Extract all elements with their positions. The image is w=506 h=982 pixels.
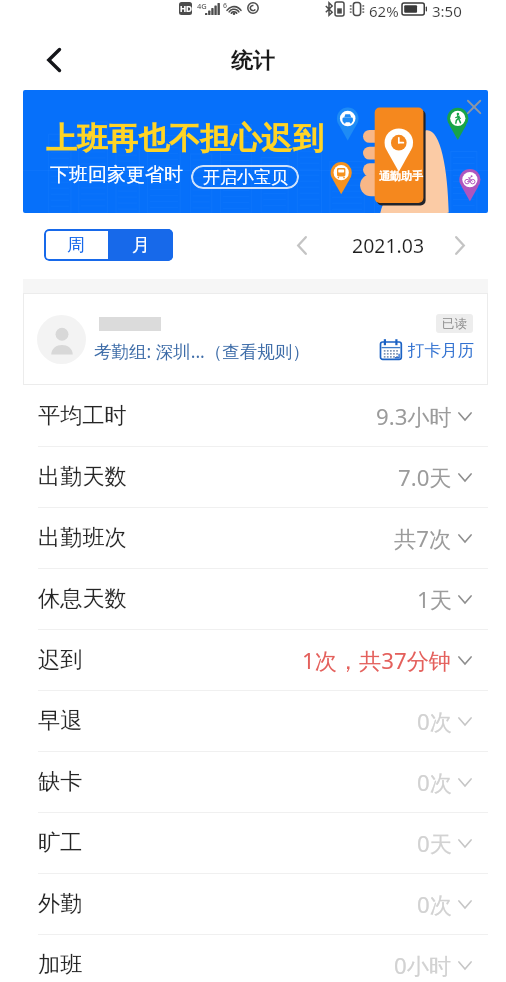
button[interactable]: 早退 [0,690,506,751]
staticText: 下班回家更省时 [50,163,183,187]
staticText: 考勤组: 深圳...（查看规则） [94,339,310,363]
button[interactable]: 休息天数 [0,568,506,629]
staticText: 出勤班次 [38,524,127,552]
button[interactable]: 外勤 [0,873,506,934]
staticText: 通勤助手 [379,169,423,183]
staticText: 0次 [417,706,452,736]
button[interactable]: 出勤班次 [0,507,506,568]
button[interactable]: 开启小宝贝 [191,165,299,189]
staticText: 月 [132,234,150,257]
staticText: 外勤 [38,890,83,918]
staticText: 6 [223,1,228,11]
button[interactable]: 旷工 [0,812,506,873]
staticText: 4G [197,1,207,11]
staticText: 打卡月历 [408,340,474,361]
staticText: 0次 [417,889,452,919]
button[interactable]: Next month [444,229,476,261]
staticText: 迟到 [38,646,83,674]
staticText: 加班 [38,951,83,979]
staticText: 0天 [417,828,452,858]
staticText: 周 [67,234,85,257]
staticText: 平均工时 [38,402,127,430]
staticText: 7.0天 [398,462,452,492]
staticText: 开启小宝贝 [203,167,288,188]
button[interactable]: 缺卡 [0,751,506,812]
staticText: 62% [369,1,399,21]
staticText: 已读 [442,316,467,332]
staticText: HD [180,3,192,14]
button[interactable]: 平均工时 [0,385,506,446]
staticText: 休息天数 [38,585,127,613]
staticText: 早退 [38,707,83,735]
staticText: 出勤天数 [38,463,127,491]
button[interactable]: 月 [108,229,173,261]
staticText: 3:50 [432,1,462,21]
staticText: 缺卡 [38,768,83,796]
button[interactable]: Back [32,38,76,82]
staticText: 共7次 [394,523,452,553]
staticText: 统计 [231,47,275,74]
button[interactable]: Close banner [463,95,485,117]
button[interactable]: 出勤天数 [0,446,506,507]
staticText: 1次，共37分钟 [302,645,452,675]
button[interactable]: 周 [44,229,108,261]
staticText: 9.3小时 [376,401,452,431]
button[interactable]: 打卡月历 [380,339,474,361]
staticText: 旷工 [38,829,83,857]
staticText: 0小时 [394,950,452,980]
staticText: 0次 [417,767,452,797]
button[interactable]: 上班再也不担心迟到 [23,90,488,213]
staticText: 上班再也不担心迟到 [46,119,324,158]
button[interactable]: 加班 [0,934,506,982]
button[interactable]: Previous month [286,229,318,261]
staticText: 2021.03 [352,232,425,259]
button[interactable]: 考勤组: 深圳...（查看规则） [23,293,488,385]
staticText: 1天 [417,584,452,614]
button[interactable]: 迟到 [0,629,506,690]
